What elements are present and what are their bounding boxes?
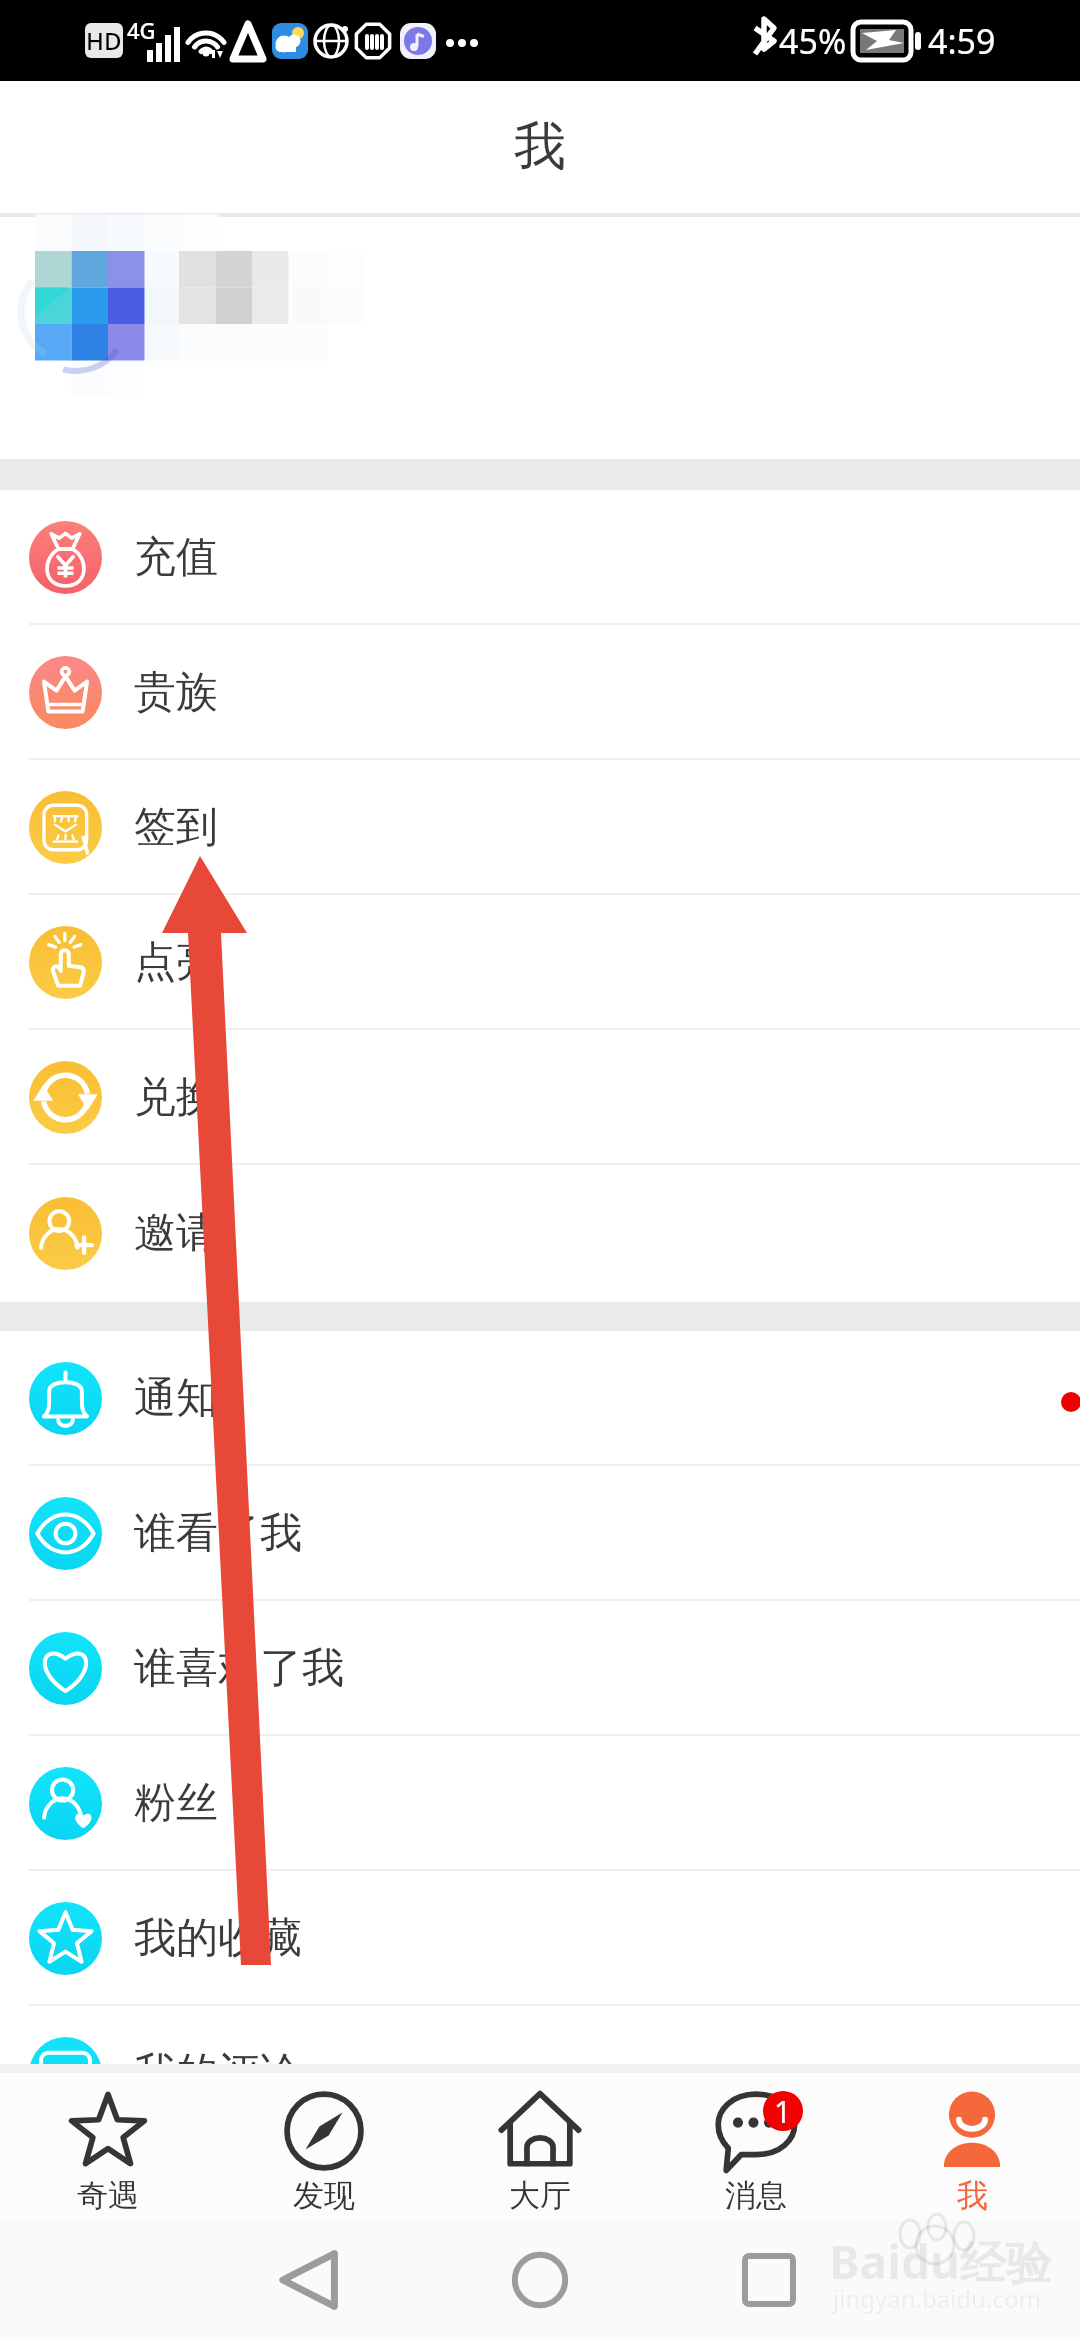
button[interactable]: 谁看了我	[0, 1466, 1080, 1601]
button[interactable]: 签到	[0, 760, 1080, 895]
button[interactable]: 邀请	[0, 1165, 1080, 1302]
staticText: 充值	[134, 531, 218, 584]
staticText: 谁看了我	[134, 1507, 302, 1560]
staticText: 通知	[134, 1372, 218, 1425]
staticText: 发现	[293, 2176, 355, 2215]
staticText: Baidu经验	[829, 2230, 1052, 2293]
button[interactable]: Home	[480, 2220, 600, 2340]
button[interactable]: 发现	[216, 2073, 432, 2220]
staticText: 4G	[127, 15, 156, 45]
staticText: HD	[86, 24, 122, 57]
staticText: 我的收藏	[134, 1912, 302, 1965]
button[interactable]: 兑换	[0, 1030, 1080, 1165]
button[interactable]: 点亮	[0, 895, 1080, 1030]
staticText: 45%	[779, 18, 847, 64]
staticText: 谁喜欢了我	[134, 1642, 344, 1695]
staticText: 1	[774, 2091, 792, 2131]
button[interactable]: Back	[248, 2220, 368, 2340]
button[interactable]: 充值	[0, 490, 1080, 625]
button[interactable]: 奇遇	[0, 2073, 216, 2220]
staticText: 邀请	[134, 1207, 218, 1260]
staticText: 我	[514, 114, 566, 180]
staticText: 奇遇	[77, 2176, 139, 2215]
staticText: 点亮	[134, 936, 218, 989]
staticText: 兑换	[134, 1071, 218, 1124]
button[interactable]: 我的评论	[0, 2006, 1080, 2141]
staticText: 4:59	[928, 18, 996, 64]
staticText: 我的评论	[134, 2047, 302, 2100]
button[interactable]: 通知	[0, 1331, 1080, 1466]
button[interactable]: 大厅	[432, 2073, 648, 2220]
staticText: jingyan.baidu.com	[833, 2282, 1041, 2315]
button[interactable]: 贵族	[0, 625, 1080, 760]
button[interactable]: 粉丝	[0, 1736, 1080, 1871]
staticText: 签到	[134, 801, 218, 854]
button[interactable]: 1	[648, 2073, 864, 2220]
staticText: 贵族	[134, 666, 218, 719]
staticText: 消息	[725, 2176, 787, 2215]
button[interactable]: 我	[864, 2073, 1080, 2220]
button[interactable]: Recent apps	[709, 2220, 829, 2340]
staticText: 我	[957, 2176, 988, 2215]
button[interactable]: Profile: avatar and nickname	[0, 217, 1080, 459]
button[interactable]: 我的收藏	[0, 1871, 1080, 2006]
staticText: 大厅	[509, 2176, 571, 2215]
button[interactable]: 谁喜欢了我	[0, 1601, 1080, 1736]
staticText: 粉丝	[134, 1777, 218, 1830]
